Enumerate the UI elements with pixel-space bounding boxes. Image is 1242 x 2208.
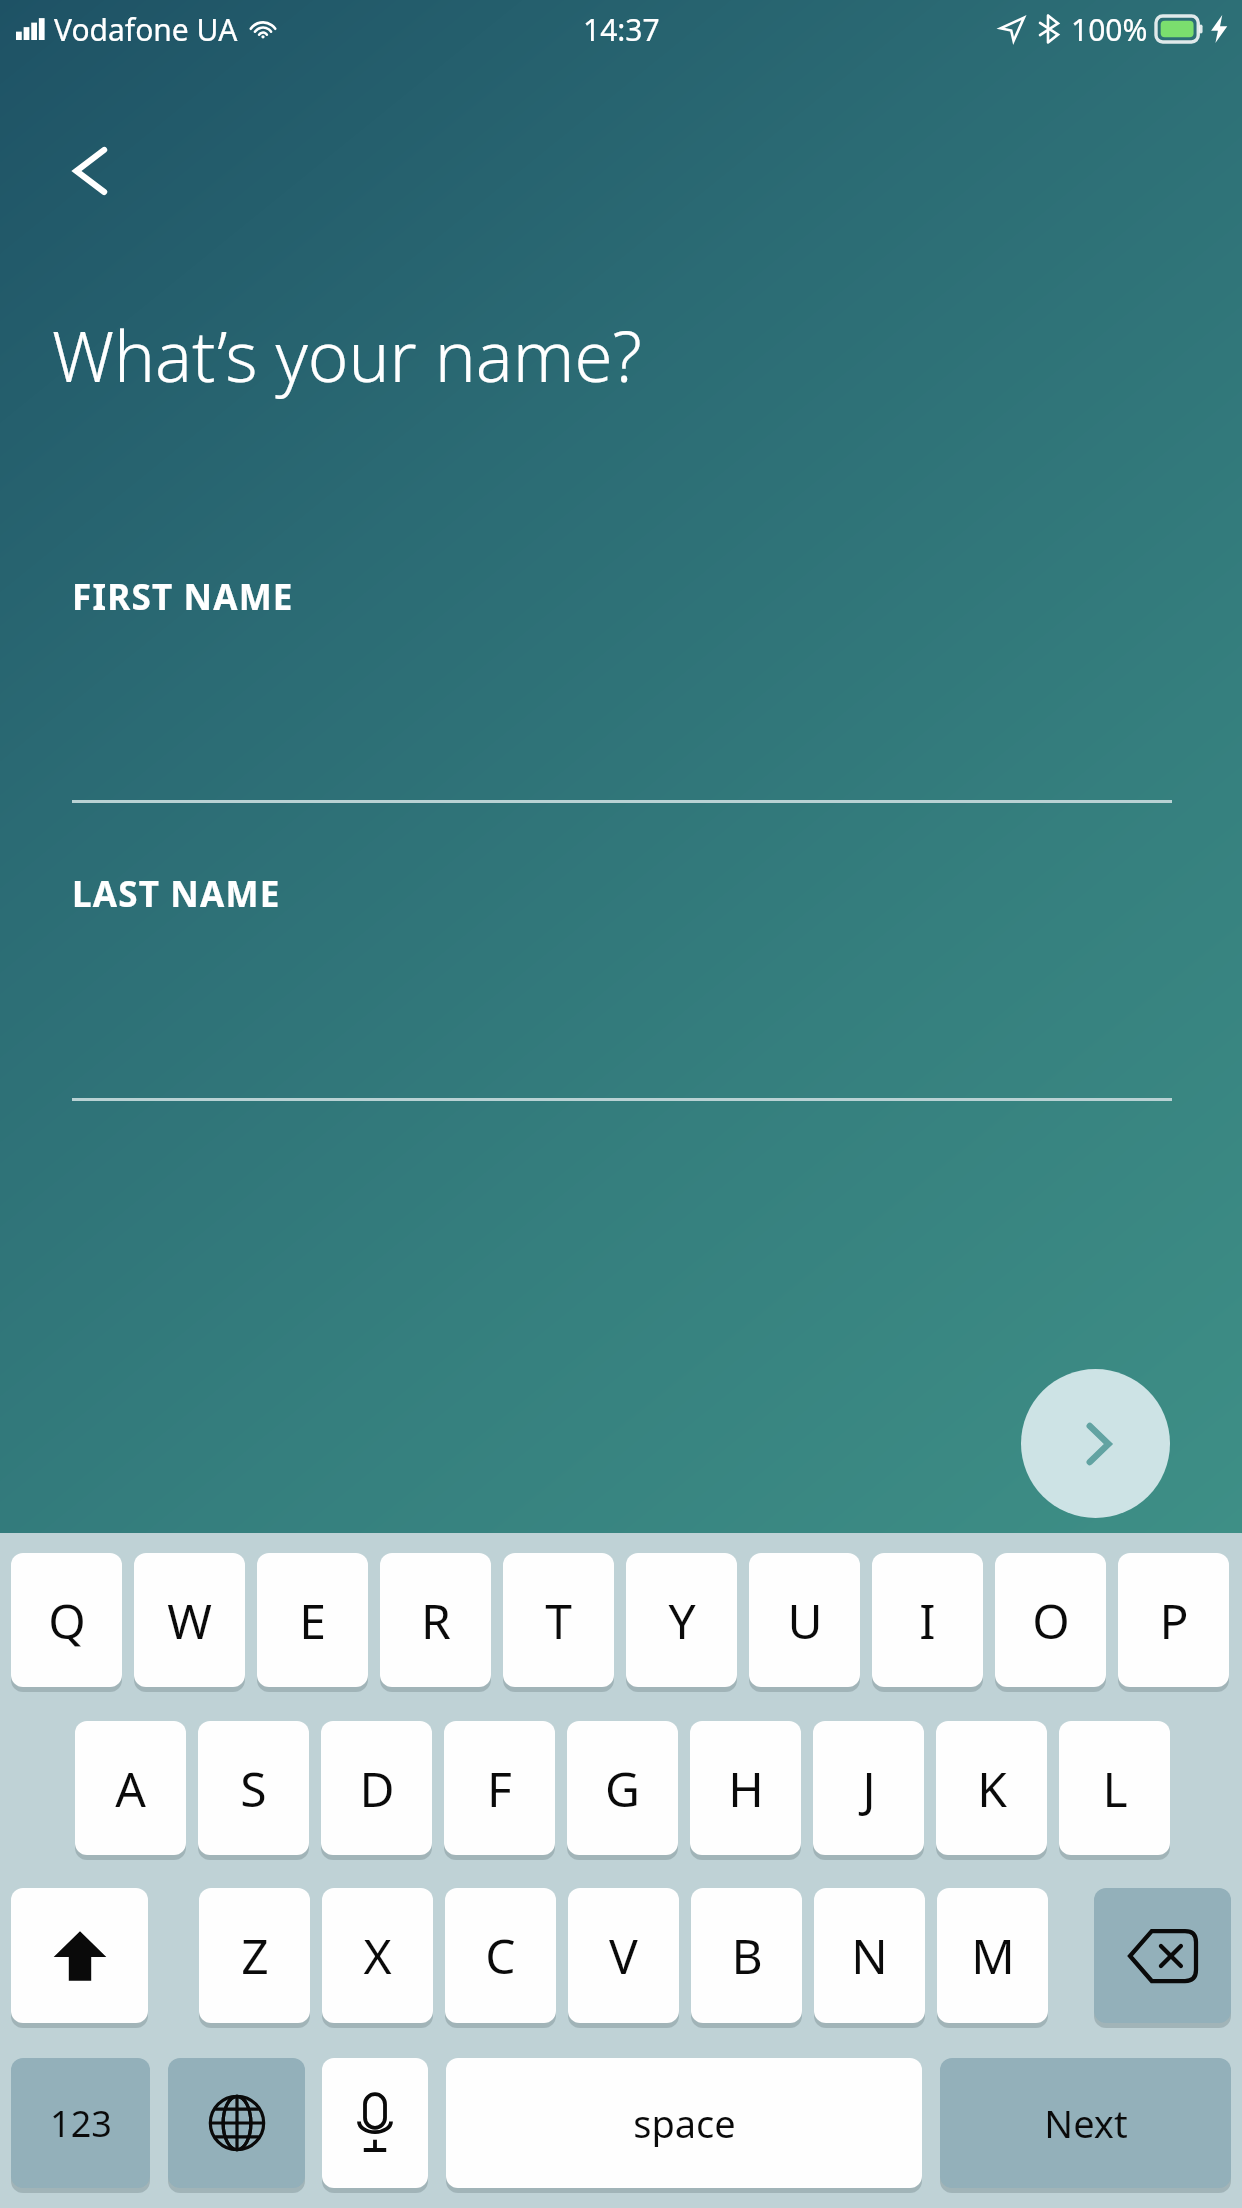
staticText: C	[485, 1923, 516, 1988]
staticText: I	[919, 1588, 936, 1653]
staticText: G	[605, 1756, 640, 1821]
button[interactable]: Backspace	[1094, 1888, 1231, 2023]
button[interactable]: D	[321, 1721, 432, 1855]
button[interactable]: I	[872, 1553, 983, 1687]
staticText: 100%	[1071, 9, 1148, 50]
staticText: R	[421, 1588, 451, 1653]
staticText: T	[545, 1588, 572, 1653]
button[interactable]: Shift	[11, 1888, 148, 2023]
staticText: V	[609, 1923, 638, 1988]
staticText: space	[633, 2097, 736, 2149]
staticText: K	[977, 1756, 1007, 1821]
button[interactable]: K	[936, 1721, 1047, 1855]
staticText: LAST NAME	[72, 870, 281, 918]
staticText: H	[728, 1756, 764, 1821]
staticText: J	[862, 1756, 876, 1821]
staticText: Vodafone UA	[54, 9, 238, 50]
button[interactable]: Next	[1021, 1369, 1170, 1518]
button[interactable]: Next	[940, 2058, 1231, 2188]
button[interactable]: J	[813, 1721, 924, 1855]
staticText: Q	[48, 1588, 86, 1653]
staticText: FIRST NAME	[72, 573, 294, 621]
staticText: 14:37	[583, 9, 660, 50]
button[interactable]: G	[567, 1721, 678, 1855]
staticText: What’s your name?	[52, 308, 642, 402]
button[interactable]: E	[257, 1553, 368, 1687]
button[interactable]: Y	[626, 1553, 737, 1687]
staticText: U	[787, 1588, 823, 1653]
button[interactable]: A	[75, 1721, 186, 1855]
staticText: D	[359, 1756, 395, 1821]
staticText: B	[731, 1923, 763, 1988]
button[interactable]: Q	[11, 1553, 122, 1687]
button[interactable]: B	[691, 1888, 802, 2023]
staticText: Z	[241, 1923, 269, 1988]
button[interactable]: U	[749, 1553, 860, 1687]
button[interactable]: X	[322, 1888, 433, 2023]
staticText: L	[1102, 1756, 1128, 1821]
staticText: O	[1032, 1588, 1070, 1653]
button[interactable]: Voice input	[322, 2058, 428, 2188]
button[interactable]: O	[995, 1553, 1106, 1687]
button[interactable]: Back	[40, 120, 138, 218]
staticText: N	[851, 1923, 888, 1988]
button[interactable]: W	[134, 1553, 245, 1687]
staticText: A	[115, 1756, 146, 1821]
button[interactable]: space	[446, 2058, 922, 2188]
staticText: Next	[1044, 2097, 1128, 2149]
staticText: F	[487, 1756, 512, 1821]
staticText: P	[1159, 1588, 1189, 1653]
button[interactable]: N	[814, 1888, 925, 2023]
button[interactable]: P	[1118, 1553, 1229, 1687]
button[interactable]: Z	[199, 1888, 310, 2023]
staticText: S	[240, 1756, 267, 1821]
button[interactable]: V	[568, 1888, 679, 2023]
staticText: E	[299, 1588, 326, 1653]
button[interactable]: F	[444, 1721, 555, 1855]
staticText: 123	[50, 2099, 112, 2148]
button[interactable]: R	[380, 1553, 491, 1687]
button[interactable]: C	[445, 1888, 556, 2023]
staticText: M	[971, 1923, 1015, 1988]
button[interactable]: S	[198, 1721, 309, 1855]
button[interactable]: T	[503, 1553, 614, 1687]
button[interactable]: L	[1059, 1721, 1170, 1855]
button[interactable]: Change keyboard language	[168, 2058, 305, 2188]
button[interactable]: 123	[11, 2058, 150, 2188]
staticText: X	[363, 1923, 392, 1988]
button[interactable]: M	[937, 1888, 1048, 2023]
staticText: Y	[668, 1588, 696, 1653]
button[interactable]: H	[690, 1721, 801, 1855]
staticText: W	[167, 1588, 212, 1653]
